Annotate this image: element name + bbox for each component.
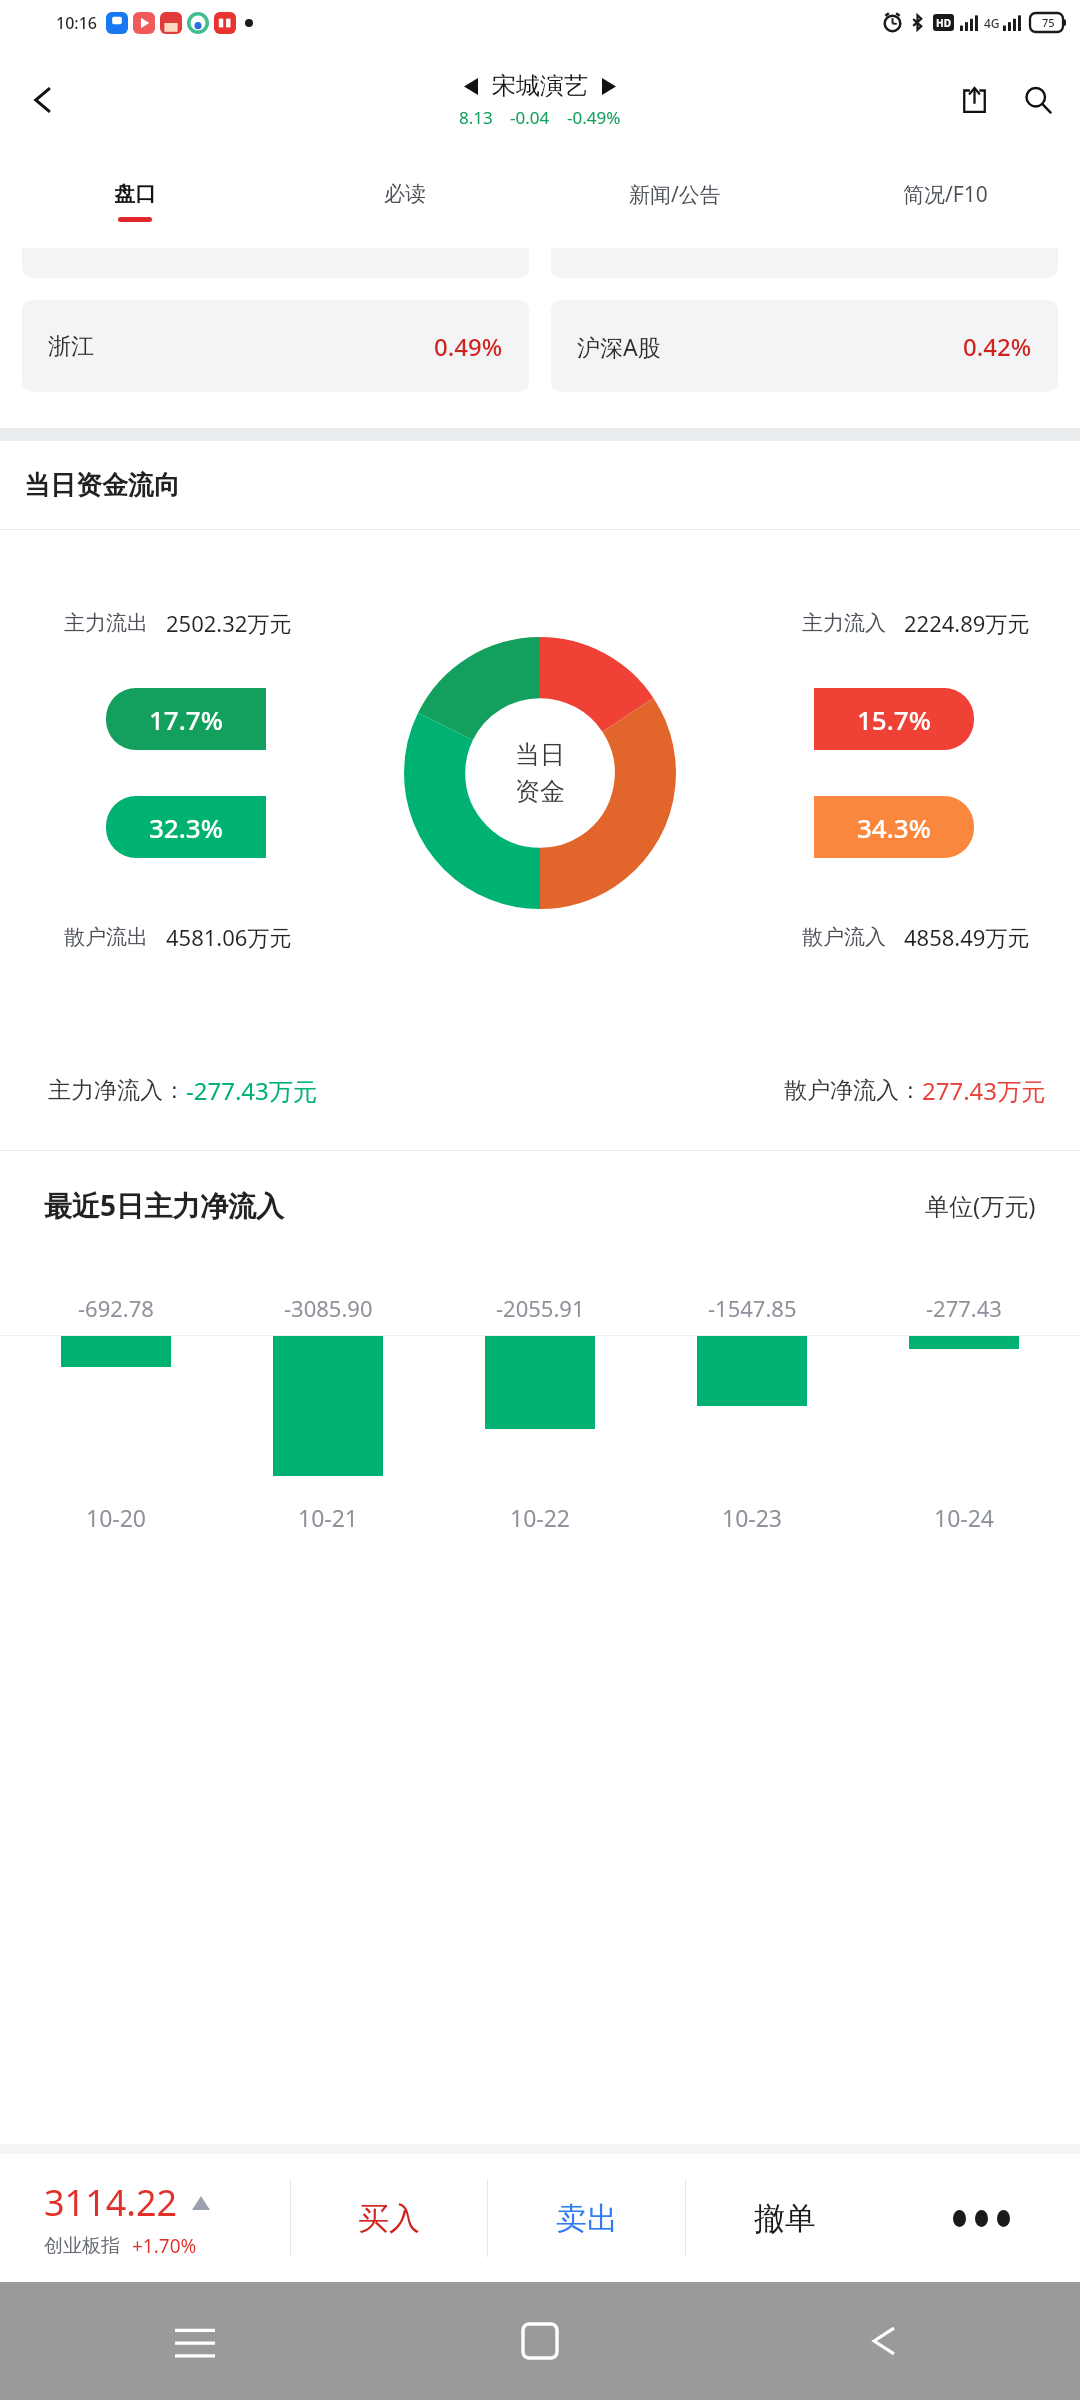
button[interactable]: 17.7% bbox=[106, 688, 266, 750]
staticText: HD bbox=[936, 16, 951, 30]
staticText: 主力流入 bbox=[802, 610, 886, 636]
button[interactable]: More bbox=[883, 2154, 1080, 2282]
staticText: 2502.32万元 bbox=[166, 608, 292, 638]
button[interactable]: 新闻/公告 bbox=[540, 155, 810, 248]
staticText: 浙江 bbox=[48, 332, 94, 361]
staticText: 4G bbox=[984, 15, 1000, 31]
button[interactable]: Home bbox=[495, 2296, 585, 2386]
staticText: 4858.49万元 bbox=[904, 922, 1030, 952]
staticText: 必读 bbox=[384, 181, 426, 207]
staticText: 0.42% bbox=[963, 330, 1032, 363]
button[interactable]: Back bbox=[14, 71, 72, 129]
staticText: 撤单 bbox=[754, 2199, 816, 2238]
staticText: 卖出 bbox=[556, 2199, 618, 2238]
staticText: 10:16 bbox=[56, 12, 97, 34]
button[interactable]: 34.3% bbox=[814, 796, 974, 858]
staticText: 宋城演艺 bbox=[492, 71, 588, 101]
staticText: 0.49% bbox=[434, 330, 503, 363]
button[interactable]: 3114.22 bbox=[0, 2154, 290, 2282]
staticText: 买入 bbox=[358, 2199, 420, 2238]
button[interactable]: Search bbox=[1012, 74, 1064, 126]
staticText: 盘口 bbox=[114, 181, 156, 207]
button[interactable]: 必读 bbox=[270, 155, 540, 248]
button[interactable]: Back bbox=[840, 2296, 930, 2386]
staticText: 3114.22 bbox=[44, 2178, 178, 2227]
staticText: 2224.89万元 bbox=[904, 608, 1030, 638]
button[interactable]: 买入 bbox=[291, 2154, 487, 2282]
staticText: 散户净流入： bbox=[784, 1076, 922, 1105]
button[interactable]: 撤单 bbox=[686, 2154, 883, 2282]
button[interactable]: 卖出 bbox=[488, 2154, 685, 2282]
staticText: -1547.85 bbox=[708, 1293, 797, 1323]
staticText: -2055.91 bbox=[496, 1293, 585, 1323]
staticText: 10-21 bbox=[298, 1502, 359, 1533]
staticText: 散户流出 bbox=[64, 924, 148, 950]
staticText: 277.43万元 bbox=[922, 1074, 1046, 1107]
button[interactable]: 盘口 bbox=[0, 155, 270, 248]
staticText: -692.78 bbox=[78, 1293, 154, 1323]
button[interactable]: 15.7% bbox=[814, 688, 974, 750]
staticText: 8.13 bbox=[459, 106, 493, 129]
staticText: -3085.90 bbox=[284, 1293, 373, 1323]
staticText: 主力净流入： bbox=[48, 1076, 186, 1105]
staticText: 当日 bbox=[515, 739, 565, 770]
staticText: -0.49% bbox=[567, 106, 621, 129]
staticText: 10-20 bbox=[86, 1502, 147, 1533]
staticText: -0.04 bbox=[510, 106, 550, 129]
staticText: 简况/F10 bbox=[903, 180, 988, 209]
staticText: 资金 bbox=[515, 776, 565, 807]
button[interactable]: 沪深A股 bbox=[551, 300, 1058, 392]
button[interactable]: Share bbox=[948, 74, 1000, 126]
staticText: 最近5日主力净流入 bbox=[44, 1186, 285, 1224]
button[interactable]: 简况/F10 bbox=[810, 155, 1080, 248]
staticText: 17.7% bbox=[149, 702, 223, 737]
staticText: 单位(万元) bbox=[925, 1189, 1036, 1222]
staticText: 当日资金流向 bbox=[24, 469, 180, 502]
staticText: 10-24 bbox=[934, 1502, 995, 1533]
staticText: 新闻/公告 bbox=[629, 180, 721, 209]
staticText: 4581.06万元 bbox=[166, 922, 292, 952]
staticText: 主力流出 bbox=[64, 610, 148, 636]
staticText: +1.70% bbox=[132, 2233, 197, 2259]
staticText: 10-22 bbox=[510, 1502, 571, 1533]
button[interactable]: 宋城演艺 bbox=[459, 71, 621, 129]
button[interactable]: 浙江 bbox=[22, 300, 529, 392]
staticText: 10-23 bbox=[722, 1502, 783, 1533]
staticText: 75 bbox=[1042, 15, 1055, 30]
staticText: 15.7% bbox=[857, 702, 931, 737]
staticText: 32.3% bbox=[149, 810, 223, 845]
staticText: 散户流入 bbox=[802, 924, 886, 950]
button[interactable]: 32.3% bbox=[106, 796, 266, 858]
staticText: -277.43万元 bbox=[186, 1074, 317, 1107]
staticText: 34.3% bbox=[857, 810, 931, 845]
staticText: -277.43 bbox=[926, 1293, 1002, 1323]
staticText: 创业板指 bbox=[44, 2234, 120, 2258]
staticText: 沪深A股 bbox=[577, 331, 661, 362]
button[interactable]: Recents bbox=[150, 2296, 240, 2386]
